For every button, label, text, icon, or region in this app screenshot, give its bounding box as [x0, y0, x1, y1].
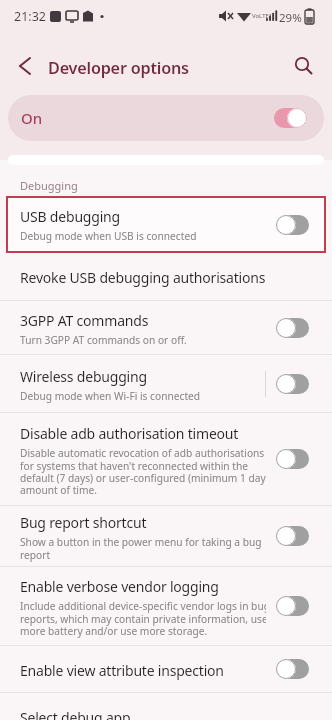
staticText: Debugging	[20, 178, 78, 193]
staticText: Disable adb authorisation timeout	[20, 424, 239, 443]
staticText: Show a button in the power menu for taki…	[20, 535, 262, 562]
button[interactable]	[288, 50, 320, 82]
button[interactable]: On	[8, 95, 324, 141]
staticText: Enable view attribute inspection	[20, 661, 224, 680]
staticText: 21:32	[14, 8, 46, 25]
button[interactable]: Revoke USB debugging authorisations	[0, 253, 332, 300]
staticText: Disable automatic revocation of adb auth…	[20, 446, 266, 497]
button[interactable]: Select debug app	[0, 693, 332, 720]
button[interactable]: Enable view attribute inspection	[0, 646, 332, 692]
staticText: USB debugging	[20, 207, 120, 226]
staticText: Bug report shortcut	[20, 513, 147, 532]
staticText: Select debug app	[20, 708, 131, 720]
staticText: Enable verbose vendor logging	[20, 577, 219, 596]
staticText: 3GPP AT commands	[20, 311, 149, 330]
button[interactable]: Disable adb authorisation timeout	[0, 413, 332, 505]
staticText: Debug mode when USB is connected	[20, 229, 197, 243]
staticText: Debug mode when Wi-Fi is connected	[20, 389, 201, 403]
button[interactable]: Wireless debugging	[0, 355, 332, 412]
staticText: Turn 3GPP AT commands on or off.	[20, 333, 187, 347]
button[interactable]: Enable verbose vendor logging	[0, 567, 332, 645]
staticText: Include additional device-specific vendo…	[20, 599, 266, 638]
staticText: Developer options	[48, 57, 189, 79]
staticText: Wireless debugging	[20, 367, 147, 386]
button[interactable]: 3GPP AT commands	[0, 301, 332, 354]
staticText: Revoke USB debugging authorisations	[20, 268, 266, 287]
staticText: On	[21, 108, 274, 128]
staticText: 29%	[279, 10, 302, 26]
button[interactable]: Bug report shortcut	[0, 506, 332, 566]
button[interactable]	[8, 50, 40, 82]
staticText: VoLTE1	[252, 12, 273, 20]
button[interactable]: USB debugging	[6, 196, 326, 253]
